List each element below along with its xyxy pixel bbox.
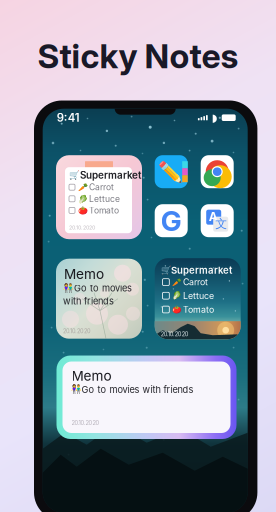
staticText: Supermarket xyxy=(80,169,141,181)
staticText: with friends xyxy=(63,296,114,307)
staticText: Memo xyxy=(64,266,104,282)
staticText: 🥕 xyxy=(172,278,182,287)
staticText: 20.10.2020 xyxy=(69,224,95,231)
staticText: Supermarket xyxy=(171,264,232,276)
staticText: 文 xyxy=(215,216,227,231)
staticText: 🥬 xyxy=(78,194,88,203)
staticText: 20.10.2020 xyxy=(71,419,99,426)
staticText: 9:41 xyxy=(57,111,80,124)
staticText: 🛒 xyxy=(161,265,171,275)
staticText: 🍅 xyxy=(78,206,88,215)
staticText: 🍅 xyxy=(172,305,182,314)
staticText: Tomato xyxy=(183,304,214,315)
staticText: ✏️ xyxy=(158,160,183,183)
staticText: Go to movies with friends xyxy=(81,384,193,395)
staticText: 🥕 xyxy=(78,182,88,192)
staticText: 👫 xyxy=(63,283,74,293)
staticText: Lettuce xyxy=(89,194,120,204)
staticText: 🥬 xyxy=(172,291,182,300)
staticText: Carrot xyxy=(89,182,114,192)
staticText: 20.10.2020 xyxy=(63,328,91,334)
staticText: 20.10.2020 xyxy=(161,331,189,338)
staticText: Lettuce xyxy=(183,290,214,301)
staticText: Memo xyxy=(71,367,111,384)
staticText: Tomato xyxy=(89,205,119,215)
staticText: Carrot xyxy=(183,277,208,287)
staticText: 🛒 xyxy=(69,170,80,180)
staticText: Go to movies xyxy=(74,283,132,294)
staticText: ◗ xyxy=(212,111,218,124)
staticText: A xyxy=(209,209,218,224)
staticText: G xyxy=(161,204,182,238)
staticText: 👫 xyxy=(70,385,81,395)
staticText: Sticky Notes xyxy=(37,36,238,76)
